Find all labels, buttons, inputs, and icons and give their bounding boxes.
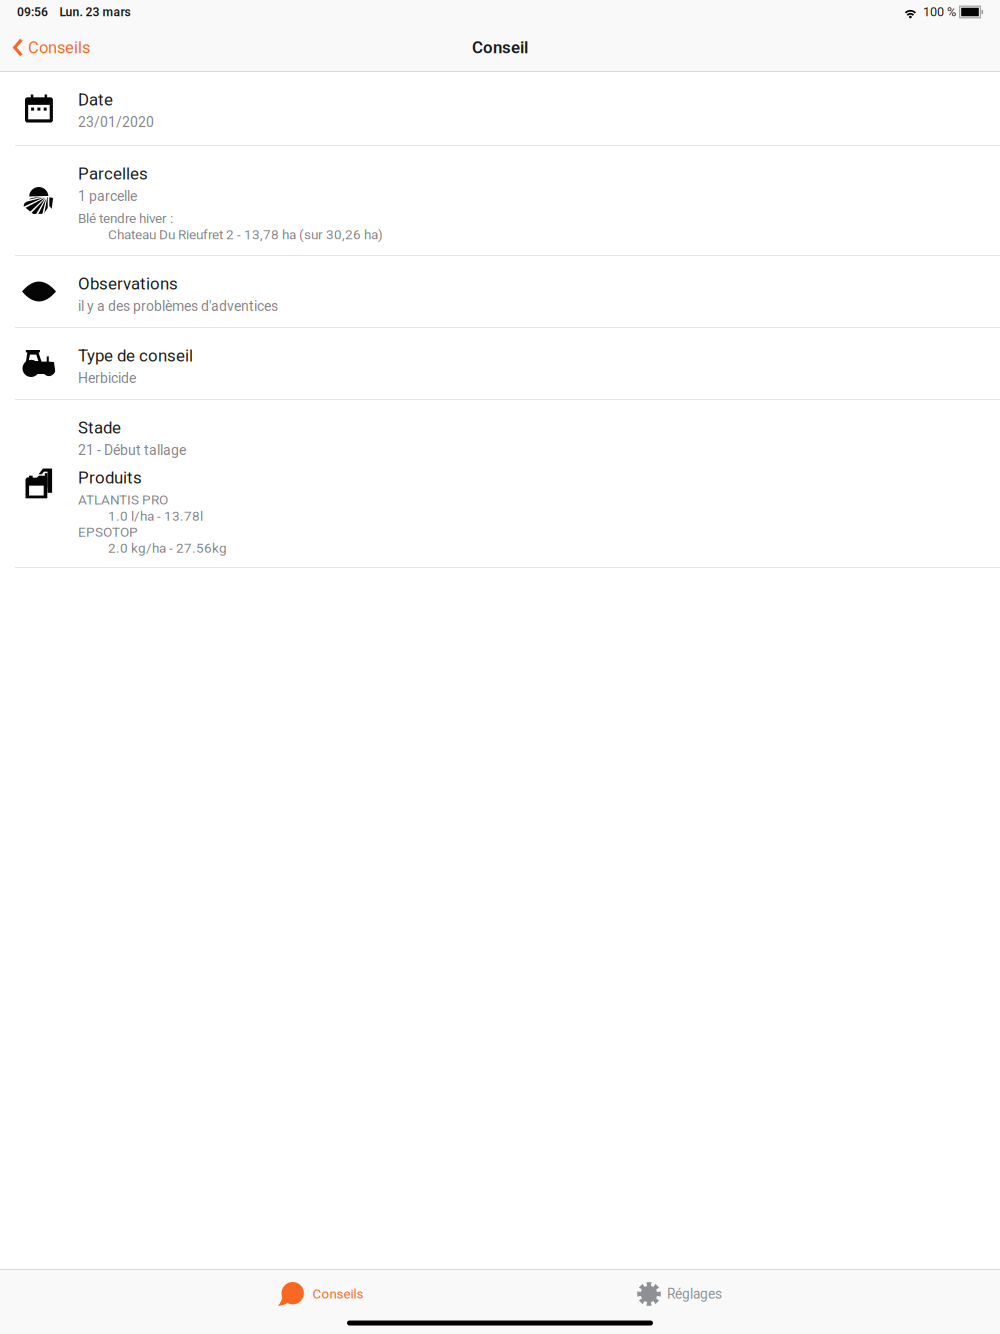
staticText: il y a des problèmes d'adventices [78,298,278,314]
staticText: Conseils [312,1286,363,1302]
button[interactable]: Parcelles [0,146,1000,256]
staticText: Lun. 23 mars [59,5,130,19]
staticText: Date [78,90,113,110]
staticText: 1 parcelle [78,188,137,204]
staticText: Stade [78,418,121,438]
staticText: Observations [78,274,178,294]
staticText: Conseil [472,38,528,57]
button[interactable]: Observations [0,256,1000,328]
button[interactable]: Conseils [141,1270,500,1312]
staticText: 21 - Début tallage [78,442,186,458]
button[interactable]: Date [0,72,1000,146]
staticText: Réglages [667,1286,722,1302]
staticText: Blé tendre hiver : [78,210,173,226]
staticText: 09:56 [17,5,48,19]
button[interactable]: Type de conseil [0,328,1000,400]
staticText: Herbicide [78,370,136,386]
button[interactable]: Stade [0,400,1000,568]
staticText: Type de conseil [78,346,193,366]
staticText: 2.0 kg/ha - 27.56kg [78,540,227,556]
button[interactable]: Conseils [0,32,90,63]
staticText: Parcelles [78,164,148,184]
staticText: Conseils [28,38,90,57]
staticText: Produits [78,468,142,487]
staticText: 1.0 l/ha - 13.78l [78,508,203,524]
staticText: Chateau Du Rieufret 2 - 13,78 ha (sur 30… [78,227,383,242]
button[interactable]: Réglages [500,1270,859,1312]
staticText: ATLANTIS PRO [78,492,168,508]
staticText: 100 % [923,5,956,19]
staticText: EPSOTOP [78,524,138,540]
staticText: 23/01/2020 [78,114,154,130]
